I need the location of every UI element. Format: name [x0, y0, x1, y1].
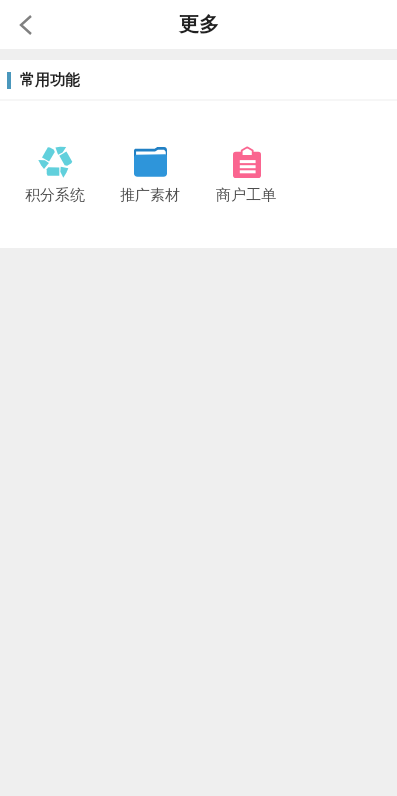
button[interactable]: Back: [0, 0, 49, 49]
staticText: 商户工单: [216, 186, 276, 205]
staticText: 常用功能: [20, 71, 80, 90]
button[interactable]: 推广素材: [102, 101, 198, 248]
staticText: 积分系统: [25, 186, 85, 205]
staticText: 更多: [179, 12, 219, 37]
staticText: 推广素材: [120, 186, 180, 205]
button[interactable]: 积分系统: [7, 101, 102, 248]
button[interactable]: 商户工单: [198, 101, 294, 248]
